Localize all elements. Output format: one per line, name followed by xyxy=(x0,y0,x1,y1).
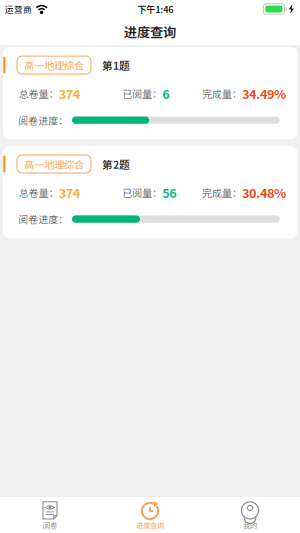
button[interactable]: 阅卷 xyxy=(0,496,100,533)
staticText: 我的 xyxy=(243,520,257,530)
staticText: 阅卷 xyxy=(43,520,57,530)
staticText: 已阅量： xyxy=(122,185,162,200)
staticText: 374 xyxy=(59,84,80,103)
staticText: 完成量： xyxy=(202,185,242,200)
staticText: 6 xyxy=(162,84,169,103)
staticText: 第2题 xyxy=(102,156,130,172)
staticText: 高一地理综合 xyxy=(24,58,84,72)
staticText: 56 xyxy=(162,183,176,202)
staticText: 34.49% xyxy=(242,84,286,103)
staticText: 高一地理综合 xyxy=(24,157,84,171)
staticText: 完成量： xyxy=(202,86,242,101)
staticText: 374 xyxy=(59,183,80,202)
staticText: 进度查询 xyxy=(124,22,176,41)
staticText: 阅卷进度： xyxy=(18,113,68,127)
button[interactable]: 进度查询 xyxy=(100,496,200,533)
staticText: 第1题 xyxy=(102,57,130,73)
staticText: 进度查询 xyxy=(136,520,164,530)
staticText: 总卷量： xyxy=(19,86,59,101)
staticText: 总卷量： xyxy=(19,185,59,200)
staticText: 阅卷进度： xyxy=(18,212,68,226)
staticText: 运营商 xyxy=(5,3,32,15)
staticText: 已阅量： xyxy=(122,86,162,101)
button[interactable]: 我的 xyxy=(200,496,300,533)
staticText: 30.48% xyxy=(242,183,286,202)
staticText: 下午1:46 xyxy=(137,2,173,16)
